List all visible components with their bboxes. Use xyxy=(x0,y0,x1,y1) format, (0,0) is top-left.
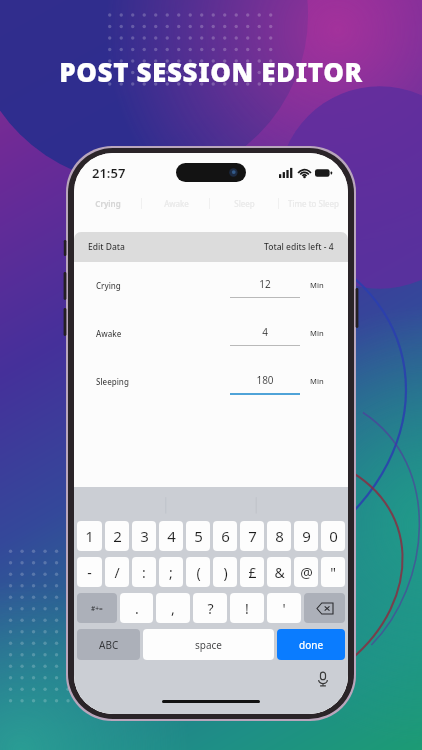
staticText: Sleeping xyxy=(96,376,129,387)
button[interactable]: Sleeping xyxy=(74,373,348,399)
button[interactable]: ' xyxy=(267,593,301,623)
staticText: Total edits left - 4 xyxy=(264,241,334,253)
button[interactable]: Time to Sleep xyxy=(279,191,348,215)
staticText: #+= xyxy=(91,604,103,613)
button[interactable]: Crying xyxy=(74,277,348,303)
button[interactable]: #+= xyxy=(77,593,117,623)
staticText: Crying xyxy=(95,198,121,209)
button[interactable]: ABC xyxy=(77,629,140,660)
staticText: ( xyxy=(196,563,201,582)
button[interactable]: ! xyxy=(230,593,264,623)
button[interactable]: : xyxy=(132,557,156,587)
staticText: 2 xyxy=(113,526,122,546)
staticText: " xyxy=(330,563,336,582)
staticText: Min xyxy=(310,328,334,338)
staticText: ; xyxy=(169,563,173,582)
staticText: - xyxy=(87,563,92,582)
button[interactable]: 8 xyxy=(267,521,291,551)
button[interactable]: Backspace xyxy=(304,593,345,623)
staticText: ? xyxy=(207,599,214,618)
button[interactable]: ? xyxy=(193,593,227,623)
staticText: 12 xyxy=(259,277,271,291)
button[interactable]: Crying xyxy=(74,191,142,215)
staticText: 6 xyxy=(221,526,230,546)
staticText: £ xyxy=(248,563,257,582)
staticText: , xyxy=(171,599,175,618)
staticText: Awake xyxy=(164,198,189,209)
staticText: POST SESSION EDITOR xyxy=(59,54,363,89)
button[interactable]: . xyxy=(120,593,153,623)
staticText: Sleep xyxy=(234,198,255,209)
staticText: & xyxy=(274,563,285,582)
button[interactable]: / xyxy=(105,557,129,587)
staticText: 4 xyxy=(262,325,268,339)
staticText: Time to Sleep xyxy=(288,198,339,209)
button[interactable]: & xyxy=(267,557,291,587)
button[interactable]: ) xyxy=(213,557,237,587)
button[interactable]: done xyxy=(277,629,345,660)
staticText: 8 xyxy=(275,526,284,546)
staticText: Min xyxy=(310,376,334,386)
button[interactable]: - xyxy=(77,557,102,587)
staticText: ) xyxy=(223,563,228,582)
staticText: 21:57 xyxy=(92,164,126,182)
button[interactable]: 7 xyxy=(240,521,264,551)
button[interactable]: Awake xyxy=(74,325,348,351)
staticText: Edit Data xyxy=(88,241,125,253)
button[interactable]: 1 xyxy=(77,521,102,551)
button[interactable]: 4 xyxy=(159,521,183,551)
staticText: @ xyxy=(300,563,313,582)
button[interactable]: 6 xyxy=(213,521,237,551)
staticText: ' xyxy=(282,599,286,618)
staticText: Crying xyxy=(96,280,121,291)
button[interactable]: @ xyxy=(294,557,318,587)
button[interactable]: 5 xyxy=(186,521,210,551)
staticText: 0 xyxy=(329,526,338,546)
staticText: ! xyxy=(245,599,249,618)
button[interactable]: 2 xyxy=(105,521,129,551)
staticText: done xyxy=(299,638,324,652)
staticText: space xyxy=(195,638,222,652)
staticText: Awake xyxy=(96,328,122,339)
staticText: 9 xyxy=(302,526,311,546)
button[interactable]: ( xyxy=(186,557,210,587)
button[interactable]: , xyxy=(156,593,190,623)
staticText: Min xyxy=(310,280,334,290)
staticText: 3 xyxy=(140,526,149,546)
button[interactable]: ; xyxy=(159,557,183,587)
staticText: 5 xyxy=(194,526,203,546)
staticText: : xyxy=(142,563,146,582)
staticText: 180 xyxy=(256,373,274,387)
staticText: ABC xyxy=(99,638,119,652)
staticText: / xyxy=(114,563,120,582)
button[interactable]: Sleep xyxy=(210,191,279,215)
button[interactable]: space xyxy=(143,629,274,660)
button[interactable]: " xyxy=(321,557,345,587)
button[interactable]: £ xyxy=(240,557,264,587)
button[interactable]: Dictate xyxy=(314,670,332,688)
button[interactable]: 9 xyxy=(294,521,318,551)
button[interactable]: 0 xyxy=(321,521,345,551)
staticText: . xyxy=(135,599,139,618)
staticText: 1 xyxy=(85,526,94,546)
button[interactable]: 3 xyxy=(132,521,156,551)
staticText: 4 xyxy=(167,526,176,546)
button[interactable]: Edit Data xyxy=(74,232,348,262)
button[interactable]: Awake xyxy=(142,191,210,215)
staticText: 7 xyxy=(248,526,257,546)
